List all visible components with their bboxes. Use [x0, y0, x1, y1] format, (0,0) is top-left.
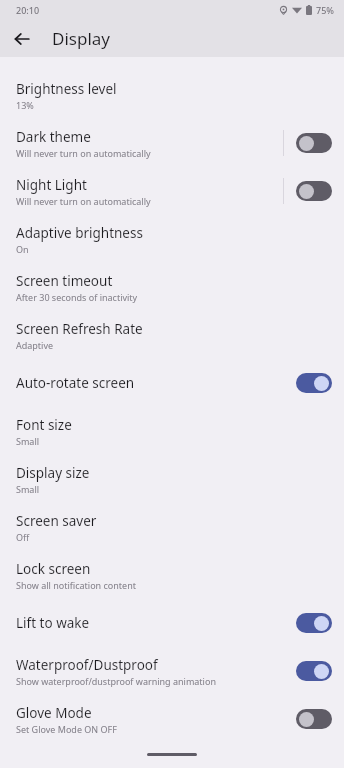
- button[interactable]: Screen saver: [0, 503, 344, 551]
- button[interactable]: Screen timeout: [0, 263, 344, 311]
- staticText: On: [16, 243, 29, 255]
- button[interactable]: Auto-rotate screen: [0, 359, 344, 407]
- button[interactable]: Lift to wake toggle: [296, 613, 332, 633]
- button[interactable]: Glove Mode: [0, 695, 344, 743]
- staticText: Waterproof/Dustproof: [16, 656, 158, 674]
- button[interactable]: Glove Mode toggle: [296, 709, 332, 729]
- staticText: Small: [16, 483, 40, 495]
- staticText: Dark theme: [16, 128, 91, 146]
- staticText: Font size: [16, 416, 72, 434]
- staticText: Night Light: [16, 176, 87, 194]
- staticText: Glove Mode: [16, 704, 92, 722]
- staticText: 75%: [316, 4, 334, 16]
- button[interactable]: Display size: [0, 455, 344, 503]
- button[interactable]: Adaptive brightness: [0, 215, 344, 263]
- staticText: Lock screen: [16, 560, 91, 578]
- button[interactable]: Night Light: [0, 167, 344, 215]
- staticText: 20:10: [16, 4, 40, 16]
- button[interactable]: Dark theme toggle: [296, 133, 332, 153]
- button[interactable]: Dark theme: [0, 119, 344, 167]
- button[interactable]: Lift to wake: [0, 599, 344, 647]
- staticText: Screen Refresh Rate: [16, 320, 143, 338]
- button[interactable]: Back: [6, 23, 38, 55]
- staticText: After 30 seconds of inactivity: [16, 291, 138, 303]
- staticText: 13%: [16, 99, 34, 111]
- staticText: Show all notification content: [16, 579, 136, 591]
- staticText: Show waterproof/dustproof warning animat…: [16, 675, 216, 687]
- button[interactable]: Auto-rotate screen toggle: [296, 373, 332, 393]
- staticText: Adaptive: [16, 339, 54, 351]
- staticText: Screen timeout: [16, 272, 113, 290]
- staticText: Lift to wake: [16, 614, 90, 632]
- staticText: Screen saver: [16, 512, 97, 530]
- staticText: Will never turn on automatically: [16, 195, 151, 207]
- staticText: Set Glove Mode ON OFF: [16, 723, 117, 735]
- staticText: Off: [16, 531, 30, 543]
- button[interactable]: Font size: [0, 407, 344, 455]
- staticText: Adaptive brightness: [16, 224, 143, 242]
- button[interactable]: Brightness level: [0, 71, 344, 119]
- staticText: Small: [16, 435, 40, 447]
- button[interactable]: Waterproof/Dustproof toggle: [296, 661, 332, 681]
- button[interactable]: Lock screen: [0, 551, 344, 599]
- staticText: Will never turn on automatically: [16, 147, 151, 159]
- staticText: Display size: [16, 464, 90, 482]
- button[interactable]: Screen Refresh Rate: [0, 311, 344, 359]
- button[interactable]: Night Light toggle: [296, 181, 332, 201]
- staticText: Brightness level: [16, 80, 117, 98]
- staticText: Display: [52, 27, 110, 50]
- button[interactable]: Waterproof/Dustproof: [0, 647, 344, 695]
- staticText: Auto-rotate screen: [16, 374, 135, 392]
